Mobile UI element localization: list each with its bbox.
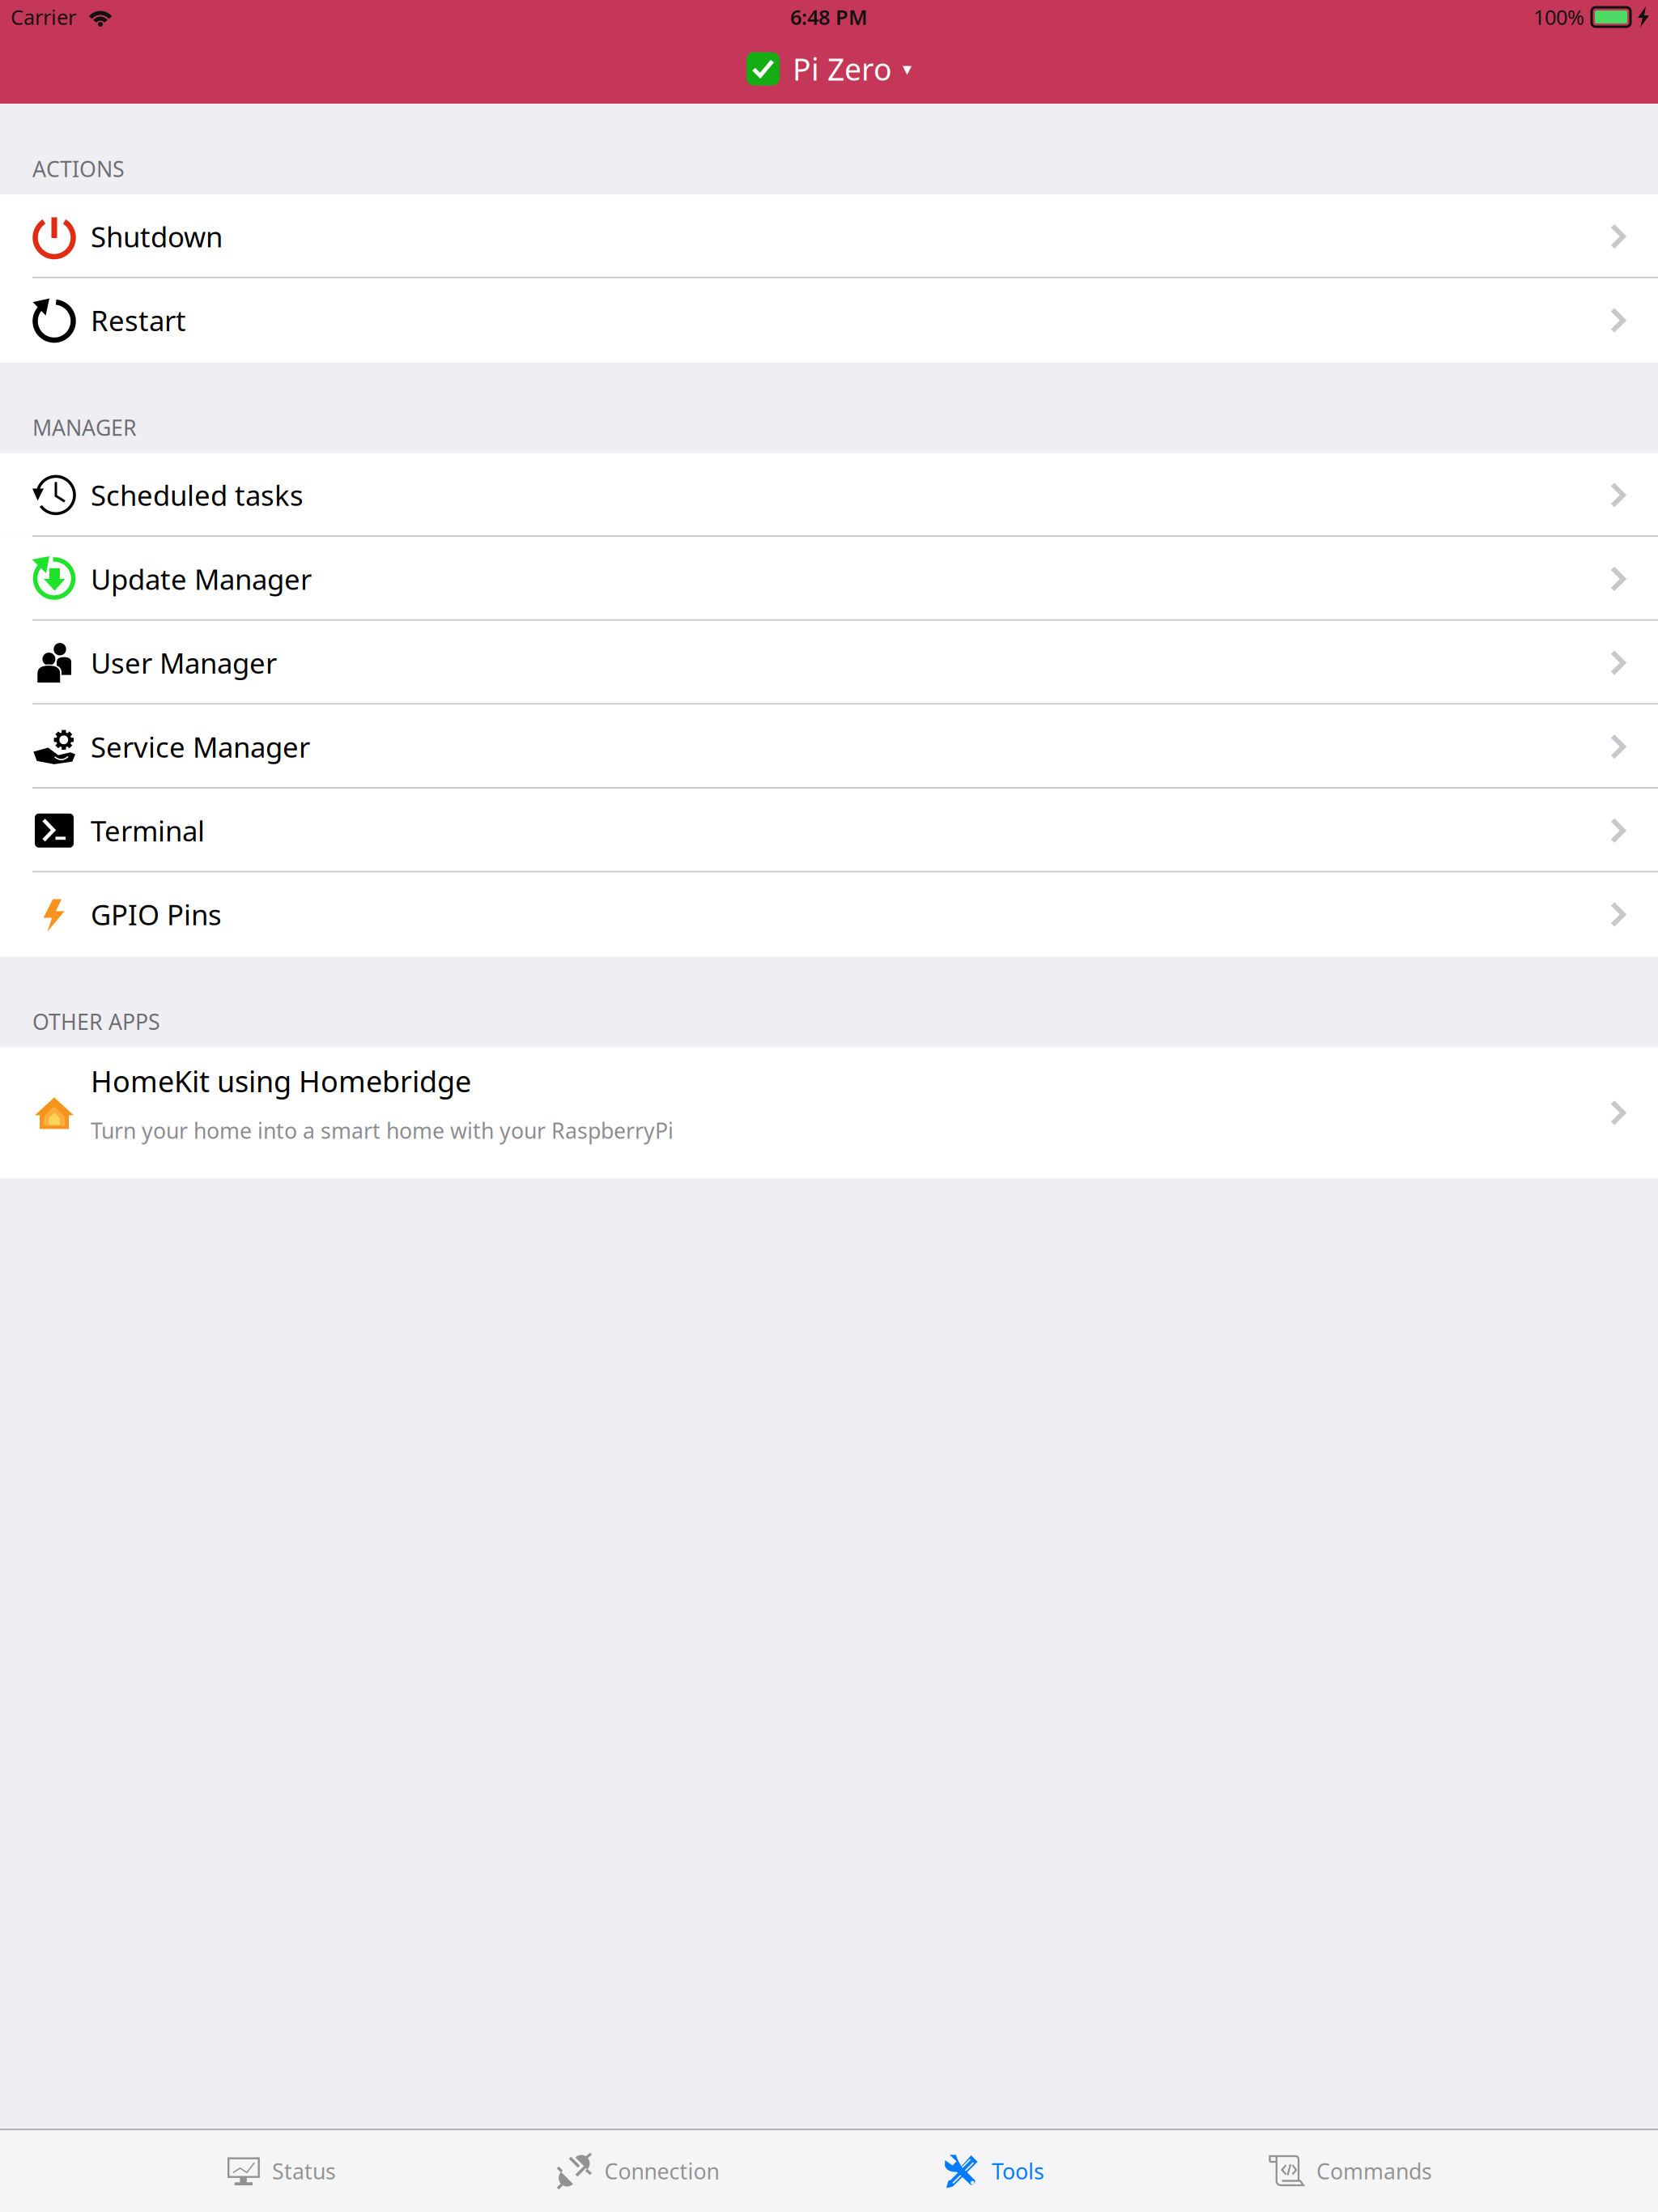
button[interactable]: Restart xyxy=(0,278,1658,362)
button[interactable]: Commands xyxy=(1172,2130,1528,2212)
staticText: Connection xyxy=(604,2157,719,2185)
staticText: Carrier xyxy=(11,3,76,31)
button[interactable]: Scheduled tasks xyxy=(0,453,1658,537)
button[interactable]: GPIO Pins xyxy=(0,872,1658,956)
staticText: Commands xyxy=(1316,2157,1432,2185)
button[interactable]: Terminal xyxy=(0,789,1658,872)
button[interactable]: Status xyxy=(104,2130,460,2212)
staticText: MANAGER xyxy=(32,413,137,442)
staticText: GPIO Pins xyxy=(91,896,222,933)
staticText: Restart xyxy=(91,302,186,339)
staticText: Service Manager xyxy=(91,728,310,765)
staticText: ACTIONS xyxy=(32,154,125,183)
button[interactable]: Shutdown xyxy=(0,194,1658,278)
button[interactable]: HomeKit using Homebridge xyxy=(0,1047,1658,1178)
staticText: Tools xyxy=(992,2157,1044,2185)
staticText: 6:48 PM xyxy=(790,3,868,31)
staticText: Shutdown xyxy=(91,218,223,255)
staticText: Pi Zero xyxy=(793,49,892,89)
staticText: OTHER APPS xyxy=(32,1007,160,1036)
button[interactable]: Update Manager xyxy=(0,537,1658,621)
button[interactable]: Pi Zero xyxy=(746,49,912,89)
staticText: Update Manager xyxy=(91,560,312,598)
staticText: Terminal xyxy=(91,812,205,849)
button[interactable]: Tools xyxy=(816,2130,1172,2212)
staticText: HomeKit using Homebridge xyxy=(91,1062,471,1100)
staticText: User Manager xyxy=(91,644,277,681)
staticText: 100% xyxy=(1533,3,1584,31)
button[interactable]: Service Manager xyxy=(0,705,1658,789)
staticText: Scheduled tasks xyxy=(91,476,304,514)
button[interactable]: User Manager xyxy=(0,621,1658,705)
staticText: Status xyxy=(272,2157,336,2185)
button[interactable]: Connection xyxy=(460,2130,816,2212)
staticText: Turn your home into a smart home with yo… xyxy=(91,1116,674,1145)
